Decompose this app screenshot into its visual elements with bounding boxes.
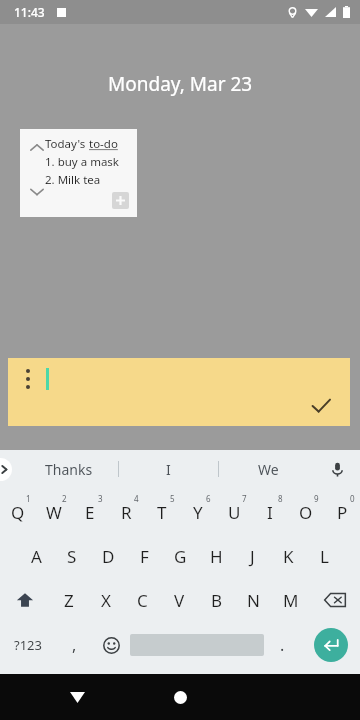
staticText: H: [210, 545, 223, 568]
staticText: X: [101, 589, 111, 612]
staticText: G: [174, 545, 187, 568]
button[interactable]: P: [324, 490, 360, 534]
staticText: K: [283, 545, 294, 568]
button[interactable]: H: [198, 534, 234, 578]
button[interactable]: K: [270, 534, 306, 578]
staticText: A: [31, 545, 42, 568]
staticText: J: [250, 545, 255, 568]
button[interactable]: C: [124, 578, 161, 622]
staticText: 4: [134, 493, 139, 504]
staticText: M: [283, 589, 299, 612]
staticText: C: [137, 589, 148, 612]
button[interactable]: V: [161, 578, 198, 622]
staticText: Y: [193, 501, 203, 524]
button[interactable]: X: [87, 578, 124, 622]
button[interactable]: F: [126, 534, 162, 578]
staticText: U: [228, 501, 241, 524]
button[interactable]: N: [235, 578, 272, 622]
button[interactable]: Q: [0, 490, 36, 534]
staticText: to-do: [89, 136, 118, 152]
staticText: 1: [26, 493, 31, 504]
staticText: Today's: [45, 136, 89, 152]
button[interactable]: ,: [56, 622, 93, 668]
button[interactable]: Z: [50, 578, 87, 622]
button[interactable]: Y: [180, 490, 216, 534]
button[interactable]: Thanks: [20, 450, 118, 488]
button[interactable]: I: [252, 490, 288, 534]
staticText: I: [166, 460, 171, 479]
button[interactable]: We: [219, 450, 318, 488]
staticText: Monday, Mar 23: [108, 71, 253, 97]
button[interactable]: More suggestions: [0, 458, 12, 481]
button[interactable]: M: [272, 578, 309, 622]
staticText: 6: [206, 493, 211, 504]
staticText: 2. Milk tea: [45, 172, 101, 188]
button[interactable]: O: [288, 490, 324, 534]
staticText: 9: [314, 493, 319, 504]
button[interactable]: Voice input: [324, 456, 350, 482]
button[interactable]: Scroll up: [20, 129, 137, 217]
staticText: Thanks: [45, 460, 93, 479]
button[interactable]: I: [119, 450, 218, 488]
button[interactable]: E: [72, 490, 108, 534]
staticText: 7: [242, 493, 247, 504]
staticText: D: [102, 545, 115, 568]
staticText: 5: [170, 493, 175, 504]
staticText: ?123: [14, 636, 42, 654]
staticText: 8: [278, 493, 283, 504]
button[interactable]: ?123: [0, 622, 56, 668]
staticText: 0: [350, 493, 355, 504]
button[interactable]: .: [264, 622, 301, 668]
staticText: 11:43: [14, 4, 45, 20]
staticText: I: [267, 501, 273, 524]
button[interactable]: Emoji: [93, 622, 130, 668]
staticText: .: [280, 634, 285, 656]
button[interactable]: S: [54, 534, 90, 578]
staticText: T: [157, 501, 167, 524]
staticText: Q: [11, 501, 25, 524]
staticText: L: [320, 545, 329, 568]
staticText: R: [121, 501, 132, 524]
button[interactable]: Back: [62, 682, 92, 712]
button[interactable]: Scroll up: [26, 137, 48, 159]
button[interactable]: J: [234, 534, 270, 578]
staticText: 2: [62, 493, 67, 504]
button[interactable]: D: [90, 534, 126, 578]
button[interactable]: Save note: [8, 358, 350, 426]
button[interactable]: A: [18, 534, 54, 578]
staticText: W: [46, 501, 62, 524]
staticText: O: [299, 501, 313, 524]
button[interactable]: T: [144, 490, 180, 534]
button[interactable]: U: [216, 490, 252, 534]
button[interactable]: Home: [165, 682, 195, 712]
staticText: F: [140, 545, 149, 568]
button[interactable]: W: [36, 490, 72, 534]
staticText: 1. buy a mask: [45, 154, 119, 170]
staticText: 3: [98, 493, 103, 504]
staticText: N: [247, 589, 260, 612]
button[interactable]: Backspace: [309, 578, 360, 622]
staticText: E: [85, 501, 95, 524]
staticText: We: [258, 460, 279, 479]
button[interactable]: B: [198, 578, 235, 622]
staticText: ,: [72, 634, 77, 656]
staticText: P: [337, 501, 348, 524]
button[interactable]: R: [108, 490, 144, 534]
staticText: B: [211, 589, 223, 612]
button[interactable]: Save note: [311, 396, 331, 416]
button[interactable]: L: [306, 534, 342, 578]
button[interactable]: Enter: [301, 622, 360, 668]
button[interactable]: Shift: [0, 578, 50, 622]
button[interactable]: Add item: [112, 192, 129, 209]
staticText: Z: [64, 589, 74, 612]
staticText: S: [67, 545, 77, 568]
button[interactable]: Scroll down: [26, 181, 48, 203]
staticText: V: [174, 589, 185, 612]
button[interactable]: G: [162, 534, 198, 578]
